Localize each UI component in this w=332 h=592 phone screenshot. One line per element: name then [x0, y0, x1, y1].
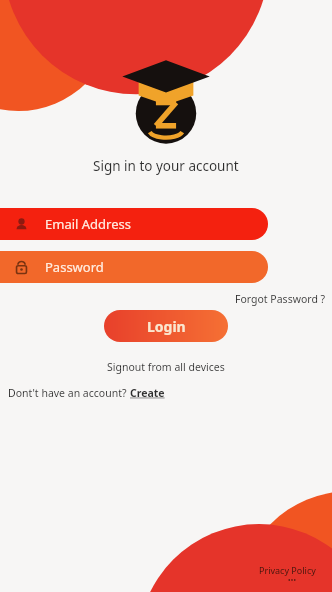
- staticText: Forgot Password ?: [235, 292, 326, 306]
- button[interactable]: Password: [0, 251, 268, 283]
- button[interactable]: Login: [104, 310, 228, 342]
- staticText: Privacy Policy: [259, 564, 316, 576]
- staticText: Sign in to your account: [93, 157, 239, 175]
- staticText: Login: [147, 317, 186, 336]
- staticText: Create: [130, 386, 165, 400]
- staticText: Signout from all devices: [107, 360, 225, 374]
- staticText: Dont't have an account?: [8, 386, 130, 400]
- staticText: Email Address: [45, 215, 131, 233]
- button[interactable]: Email Address: [0, 208, 268, 240]
- button[interactable]: Signout from all devices: [101, 358, 231, 376]
- button[interactable]: More options: [285, 573, 299, 587]
- button[interactable]: Create: [130, 386, 165, 400]
- staticText: Password: [45, 258, 104, 276]
- button[interactable]: Forgot Password ?: [229, 290, 332, 308]
- button[interactable]: Privacy Policy: [255, 562, 320, 578]
